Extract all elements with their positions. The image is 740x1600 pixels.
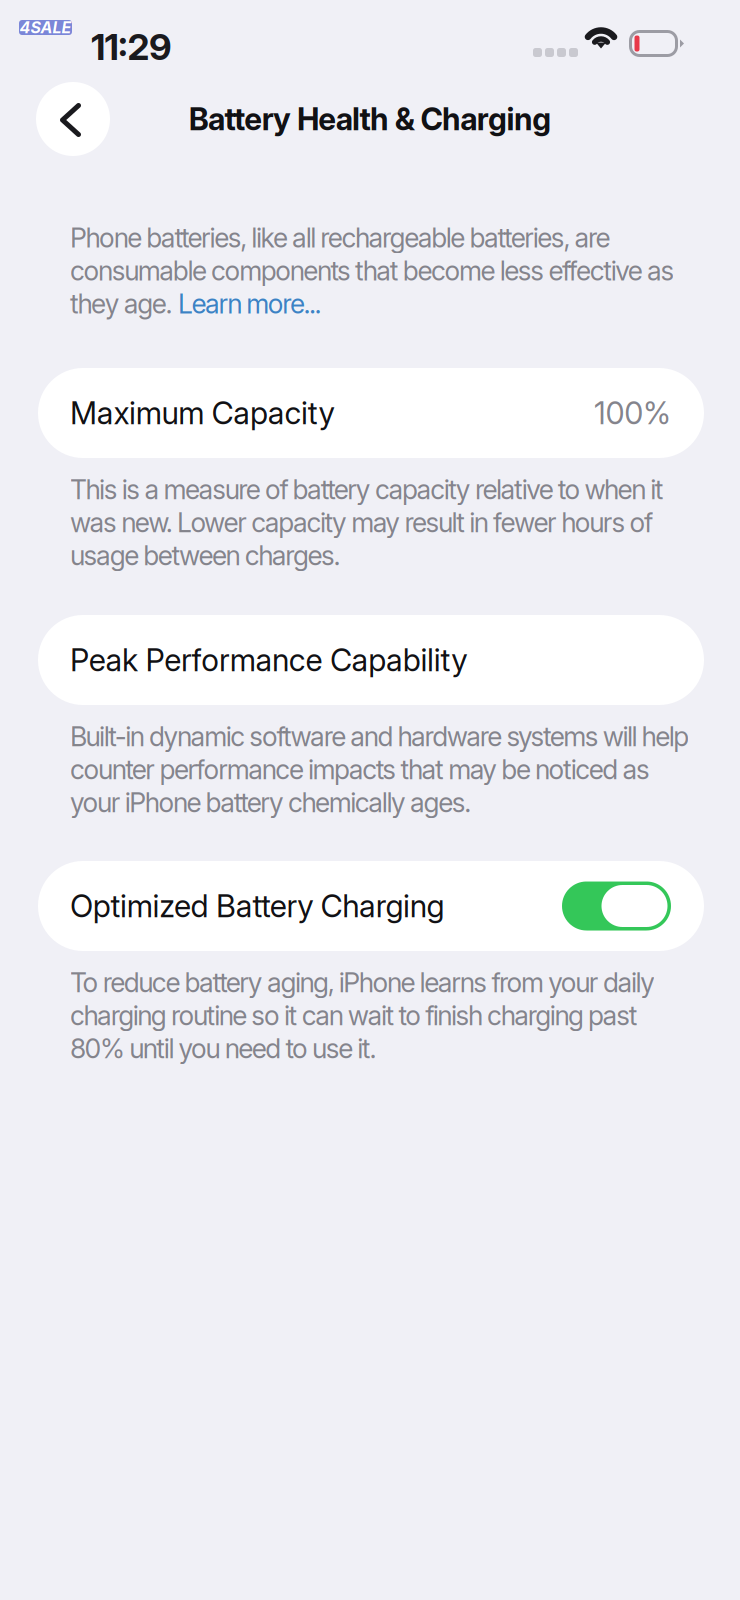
staticText: 11:29 [91, 25, 172, 69]
staticText: Built-in dynamic software and hardware s… [70, 720, 689, 753]
button[interactable]: Maximum Capacity [38, 368, 704, 458]
staticText: 80% until you need to use it. [70, 1032, 376, 1065]
staticText: To reduce battery aging, iPhone learns f… [70, 966, 655, 999]
staticText: usage between charges. [70, 539, 340, 572]
staticText: This is a measure of battery capacity re… [70, 473, 664, 506]
staticText: they age. [70, 288, 178, 320]
staticText: counter performance impacts that may be … [70, 753, 650, 786]
button[interactable]: Peak Performance Capability [38, 615, 704, 705]
staticText: was new. Lower capacity may result in fe… [70, 506, 653, 539]
staticText: 4SALE [19, 18, 71, 37]
staticText: Battery Health & Charging [189, 100, 551, 137]
staticText: Optimized Battery Charging [70, 887, 444, 924]
staticText: Peak Performance Capability [70, 641, 467, 678]
staticText: Learn more... [178, 288, 321, 320]
staticText: consumable components that become less e… [70, 255, 674, 287]
staticText: charging routine so it can wait to finis… [70, 999, 638, 1032]
button[interactable]: Optimized Battery Charging [38, 861, 704, 951]
staticText: 100% [594, 394, 671, 431]
staticText: your iPhone battery chemically ages. [70, 786, 471, 819]
button[interactable]: Learn more... [178, 288, 321, 320]
button[interactable]: Back [36, 82, 110, 156]
staticText: Maximum Capacity [70, 394, 334, 431]
staticText: Phone batteries, like all rechargeable b… [70, 222, 611, 254]
